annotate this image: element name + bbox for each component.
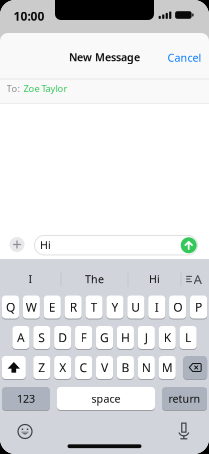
button[interactable]: I — [148, 295, 165, 319]
button[interactable]: Hi — [132, 266, 176, 292]
staticText: S — [38, 329, 45, 345]
staticText: B — [121, 359, 129, 375]
button[interactable]: I — [5, 266, 55, 292]
button[interactable]: K — [159, 326, 176, 350]
staticText: Cancel — [167, 50, 201, 65]
staticText: Y — [111, 299, 118, 315]
button[interactable]: Delete — [183, 356, 207, 380]
button[interactable]: Numbers — [2, 387, 50, 411]
staticText: D — [58, 329, 67, 345]
button[interactable]: Cancel — [167, 50, 201, 65]
button[interactable]: Message text field — [34, 235, 198, 255]
button[interactable]: The — [66, 266, 122, 292]
staticText: G — [100, 329, 109, 345]
button[interactable]: S — [33, 326, 50, 350]
staticText: I — [28, 272, 32, 286]
staticText: Q — [6, 299, 15, 315]
staticText: return — [168, 391, 200, 406]
staticText: F — [81, 329, 87, 345]
staticText: space — [91, 391, 120, 406]
button[interactable]: V — [96, 356, 113, 380]
staticText: M — [162, 359, 173, 375]
button[interactable]: space — [57, 387, 155, 411]
button[interactable]: N — [138, 356, 155, 380]
button[interactable]: Q — [2, 295, 19, 319]
button[interactable]: D — [54, 326, 71, 350]
staticText: H — [121, 329, 130, 345]
staticText: Hi — [149, 272, 160, 286]
button[interactable]: Dictation — [178, 422, 190, 439]
staticText: A — [193, 270, 202, 288]
button[interactable]: Z — [33, 356, 50, 380]
button[interactable]: H — [117, 326, 134, 350]
staticText: U — [131, 299, 140, 315]
button[interactable]: X — [54, 356, 71, 380]
button[interactable]: Y — [106, 295, 123, 319]
button[interactable]: B — [117, 356, 134, 380]
staticText: T — [91, 299, 98, 315]
button[interactable]: L — [180, 326, 197, 350]
staticText: E — [49, 299, 56, 315]
button[interactable]: R — [65, 295, 82, 319]
button[interactable]: Shift — [2, 356, 26, 380]
button[interactable]: Send — [181, 237, 197, 253]
staticText: R — [70, 299, 77, 315]
button[interactable]: Add attachment — [9, 237, 24, 252]
staticText: I — [155, 299, 159, 315]
button[interactable]: Emoji — [18, 424, 32, 438]
staticText: N — [142, 359, 151, 375]
button[interactable]: E — [44, 295, 61, 319]
staticText: W — [26, 299, 37, 315]
button[interactable]: M — [159, 356, 176, 380]
staticText: Z — [38, 359, 45, 375]
button[interactable]: Scan text — [181, 266, 207, 292]
staticText: O — [173, 299, 182, 315]
staticText: New Message — [69, 50, 140, 64]
staticText: Hi — [40, 238, 51, 252]
staticText: L — [185, 329, 191, 345]
staticText: V — [101, 359, 108, 375]
staticText: The — [85, 272, 104, 286]
button[interactable]: return — [162, 387, 207, 411]
staticText: K — [164, 329, 171, 345]
staticText: A — [17, 329, 25, 345]
button[interactable]: U — [127, 295, 144, 319]
staticText: Zoe Taylor — [23, 82, 67, 95]
button[interactable]: F — [75, 326, 92, 350]
staticText: 10:00 — [13, 8, 44, 24]
staticText: P — [195, 299, 202, 315]
button[interactable]: To: — [6, 82, 67, 95]
staticText: To: — [6, 82, 20, 95]
staticText: X — [59, 359, 66, 375]
button[interactable]: G — [96, 326, 113, 350]
button[interactable]: C — [75, 356, 92, 380]
button[interactable]: P — [190, 295, 207, 319]
button[interactable]: J — [138, 326, 155, 350]
staticText: 123 — [17, 391, 35, 406]
button[interactable]: W — [23, 295, 40, 319]
button[interactable]: A — [12, 326, 29, 350]
staticText: J — [145, 329, 148, 345]
button[interactable]: O — [169, 295, 186, 319]
button[interactable]: T — [85, 295, 103, 319]
staticText: C — [80, 359, 88, 375]
